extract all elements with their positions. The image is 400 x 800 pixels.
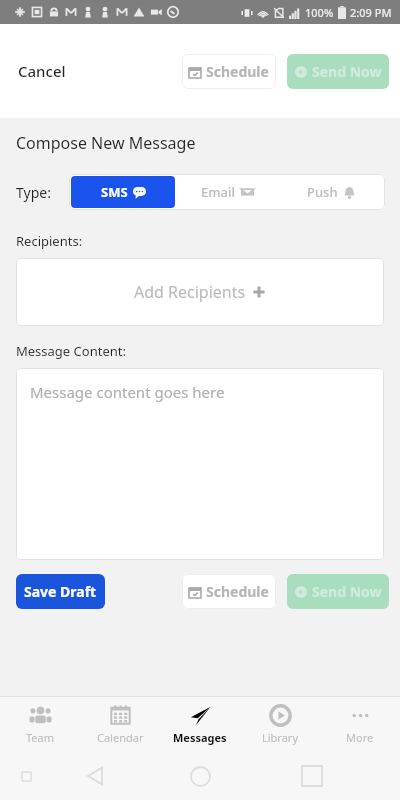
staticText: Schedule: [206, 582, 269, 601]
staticText: Messages: [173, 730, 227, 745]
staticText: 2:09 PM: [350, 5, 392, 20]
button[interactable]: Send Now: [287, 574, 389, 609]
button[interactable]: Cancel: [16, 53, 68, 89]
staticText: Type:: [16, 183, 51, 202]
button[interactable]: Email: [175, 176, 279, 208]
staticText: Library: [262, 730, 299, 745]
staticText: Email: [201, 183, 236, 201]
button[interactable]: Message content goes here: [16, 368, 384, 560]
other: Home: [190, 766, 211, 787]
staticText: Send Now: [312, 582, 382, 601]
button[interactable]: Library: [240, 697, 320, 752]
other: Keyboard: [22, 772, 31, 781]
button[interactable]: More: [320, 697, 400, 752]
staticText: Recipients:: [16, 232, 83, 250]
button[interactable]: Schedule: [182, 574, 276, 609]
button[interactable]: Send Now: [287, 54, 389, 89]
staticText: Push: [307, 183, 338, 201]
button[interactable]: Push: [279, 176, 383, 208]
staticText: Add Recipients: [134, 281, 246, 303]
button[interactable]: Calendar: [80, 697, 160, 752]
staticText: Message content goes here: [30, 382, 225, 402]
staticText: Save Draft: [24, 582, 97, 601]
button[interactable]: SMS: [71, 176, 175, 208]
button[interactable]: Schedule: [182, 54, 276, 89]
staticText: SMS: [101, 183, 128, 201]
button[interactable]: Save Draft: [16, 574, 105, 609]
staticText: Compose New Message: [16, 132, 196, 154]
button[interactable]: Team: [0, 697, 80, 752]
staticText: Message Content:: [16, 342, 126, 360]
staticText: Team: [26, 730, 55, 745]
other: Back: [84, 765, 106, 787]
staticText: Calendar: [97, 730, 144, 745]
staticText: More: [346, 730, 374, 745]
button[interactable]: Add Recipients: [16, 258, 384, 326]
staticText: Schedule: [206, 62, 269, 81]
staticText: Cancel: [18, 61, 66, 81]
staticText: 100%: [305, 5, 334, 20]
staticText: Send Now: [312, 62, 382, 81]
other: Recents: [302, 766, 322, 786]
button[interactable]: Messages: [160, 697, 240, 752]
